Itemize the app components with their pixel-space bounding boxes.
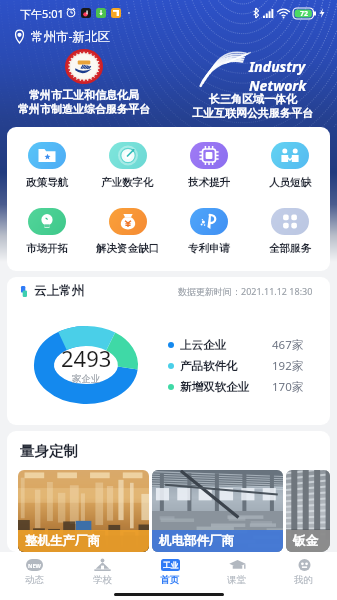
staticText: 首页: [160, 574, 179, 586]
staticText: 数据更新时间：2021.11.12 18:30: [178, 285, 313, 297]
button[interactable]: 政策导航: [7, 142, 87, 189]
staticText: 人员短缺: [269, 176, 311, 189]
staticText: 全部服务: [269, 242, 311, 255]
button[interactable]: 课堂: [203, 552, 270, 600]
staticText: Industry: [249, 57, 306, 76]
button[interactable]: 专利申请: [168, 208, 249, 255]
staticText: 下午5:01: [20, 6, 64, 21]
staticText: NEW: [28, 562, 41, 569]
button[interactable]: 市场开拓: [7, 208, 87, 255]
staticText: 学校: [93, 574, 112, 586]
button[interactable]: 钣金: [286, 470, 330, 552]
button[interactable]: 全部服务: [249, 208, 330, 255]
staticText: 工业互联网公共服务平台: [192, 106, 313, 120]
button[interactable]: NEW: [0, 552, 68, 600]
staticText: 机电部件厂商: [159, 533, 234, 549]
staticText: 常州市工业和信息化局: [29, 88, 139, 102]
staticText: 云上常州: [34, 283, 84, 299]
staticText: 技术提升: [188, 176, 230, 189]
staticText: 整机生产厂商: [25, 533, 100, 549]
staticText: 专利申请: [188, 242, 230, 255]
staticText: 市场开拓: [26, 242, 68, 255]
button[interactable]: 我的: [270, 552, 337, 600]
staticText: 产业数字化: [101, 176, 154, 189]
staticText: 新增双软企业: [180, 380, 249, 394]
button[interactable]: 人员短缺: [249, 142, 330, 189]
button[interactable]: 机电部件厂商: [152, 470, 283, 552]
button[interactable]: 学校: [68, 552, 136, 600]
staticText: 常州市制造业综合服务平台: [18, 102, 150, 116]
button[interactable]: 解决资金缺口: [87, 208, 168, 255]
staticText: 量身定制: [20, 442, 78, 460]
staticText: 72: [300, 9, 309, 19]
staticText: Network: [249, 76, 307, 91]
staticText: 解决资金缺口: [96, 242, 159, 255]
staticText: 政策导航: [26, 176, 68, 189]
staticText: 工业: [163, 561, 178, 570]
staticText: 动态: [25, 574, 44, 586]
button[interactable]: 工业: [136, 552, 203, 600]
staticText: 2493: [61, 343, 112, 373]
staticText: 课堂: [227, 574, 246, 586]
button[interactable]: 整机生产厂商: [18, 470, 149, 552]
staticText: 我的: [294, 574, 313, 586]
staticText: 467家: [272, 337, 304, 353]
staticText: 上云企业: [180, 338, 226, 352]
staticText: 产品软件化: [180, 359, 238, 373]
staticText: 钣金: [293, 533, 318, 549]
staticText: 长三角区域一体化: [209, 92, 297, 106]
staticText: 常州市-新北区: [31, 28, 111, 45]
staticText: 192家: [272, 358, 304, 374]
staticText: 家企业: [72, 373, 101, 385]
button[interactable]: 产业数字化: [87, 142, 168, 189]
staticText: 170家: [272, 379, 304, 395]
button[interactable]: 技术提升: [168, 142, 249, 189]
